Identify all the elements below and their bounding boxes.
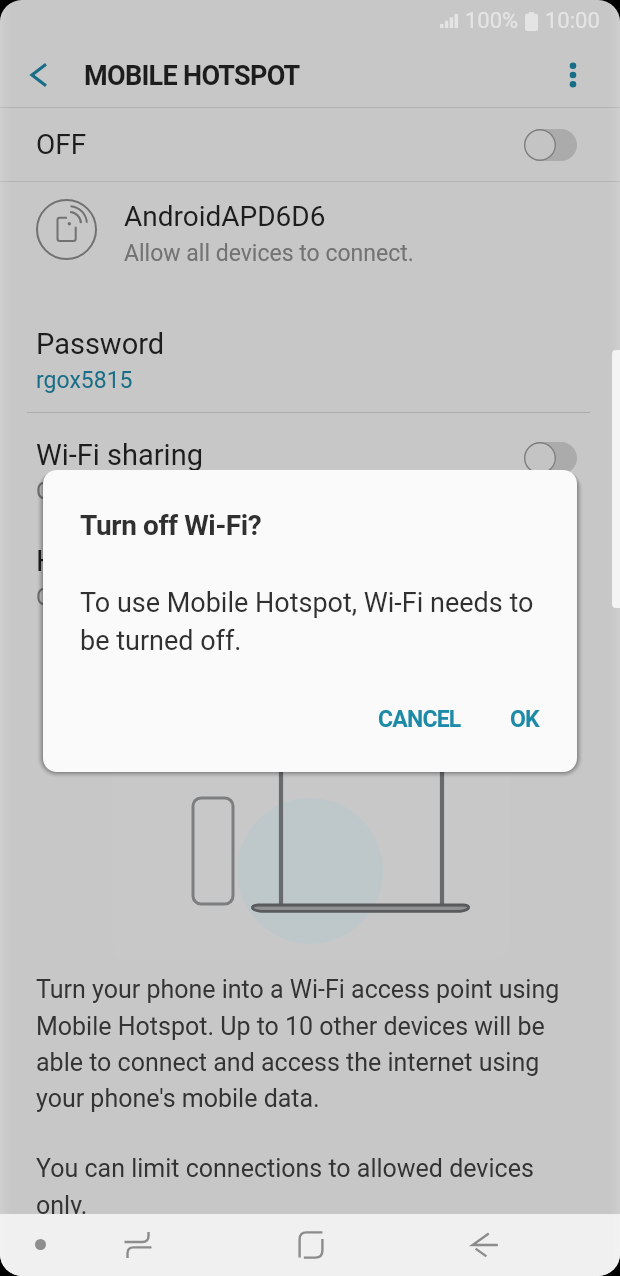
button[interactable]: OK bbox=[499, 697, 550, 742]
button[interactable]: Recent apps bbox=[51, 1214, 224, 1276]
button[interactable]: OFF bbox=[0, 108, 620, 181]
staticText: To use Mobile Hotspot, Wi-Fi needs to be… bbox=[80, 587, 547, 657]
staticText: OK bbox=[510, 706, 539, 733]
button[interactable]: Hide navigation bar bbox=[0, 1214, 80, 1276]
button[interactable]: Wi-Fi sharing bbox=[0, 438, 620, 505]
staticText: You can limit connections to allowed dev… bbox=[36, 1154, 584, 1214]
button[interactable]: Password bbox=[0, 327, 620, 394]
staticText: 10:00 bbox=[545, 8, 600, 34]
staticText: rgox5815 bbox=[36, 367, 133, 394]
button[interactable]: Home bbox=[224, 1214, 397, 1276]
staticText: Password bbox=[36, 327, 165, 361]
staticText: AndroidAPD6D6 bbox=[124, 200, 326, 233]
staticText: MOBILE HOTSPOT bbox=[84, 60, 300, 92]
staticText: Turn your phone into a Wi-Fi access poin… bbox=[36, 975, 584, 1113]
staticText: Wi-Fi sharing bbox=[36, 438, 203, 472]
staticText: Turn off Wi-Fi? bbox=[80, 509, 262, 542]
button[interactable]: Navigate up bbox=[17, 52, 65, 100]
button[interactable]: Back bbox=[397, 1214, 570, 1276]
staticText: CANCEL bbox=[378, 706, 461, 733]
staticText: Hidden network bbox=[36, 544, 239, 578]
button[interactable]: Hidden network bbox=[0, 544, 620, 611]
staticText: Off bbox=[36, 478, 68, 505]
button[interactable]: AndroidAPD6D6 bbox=[0, 199, 620, 266]
staticText: OFF bbox=[36, 128, 87, 161]
staticText: 100% bbox=[465, 8, 519, 34]
button[interactable]: CANCEL bbox=[367, 697, 472, 742]
button[interactable]: More options bbox=[549, 52, 597, 100]
staticText: Allow all devices to connect. bbox=[124, 240, 414, 267]
staticText: Off bbox=[36, 584, 68, 611]
